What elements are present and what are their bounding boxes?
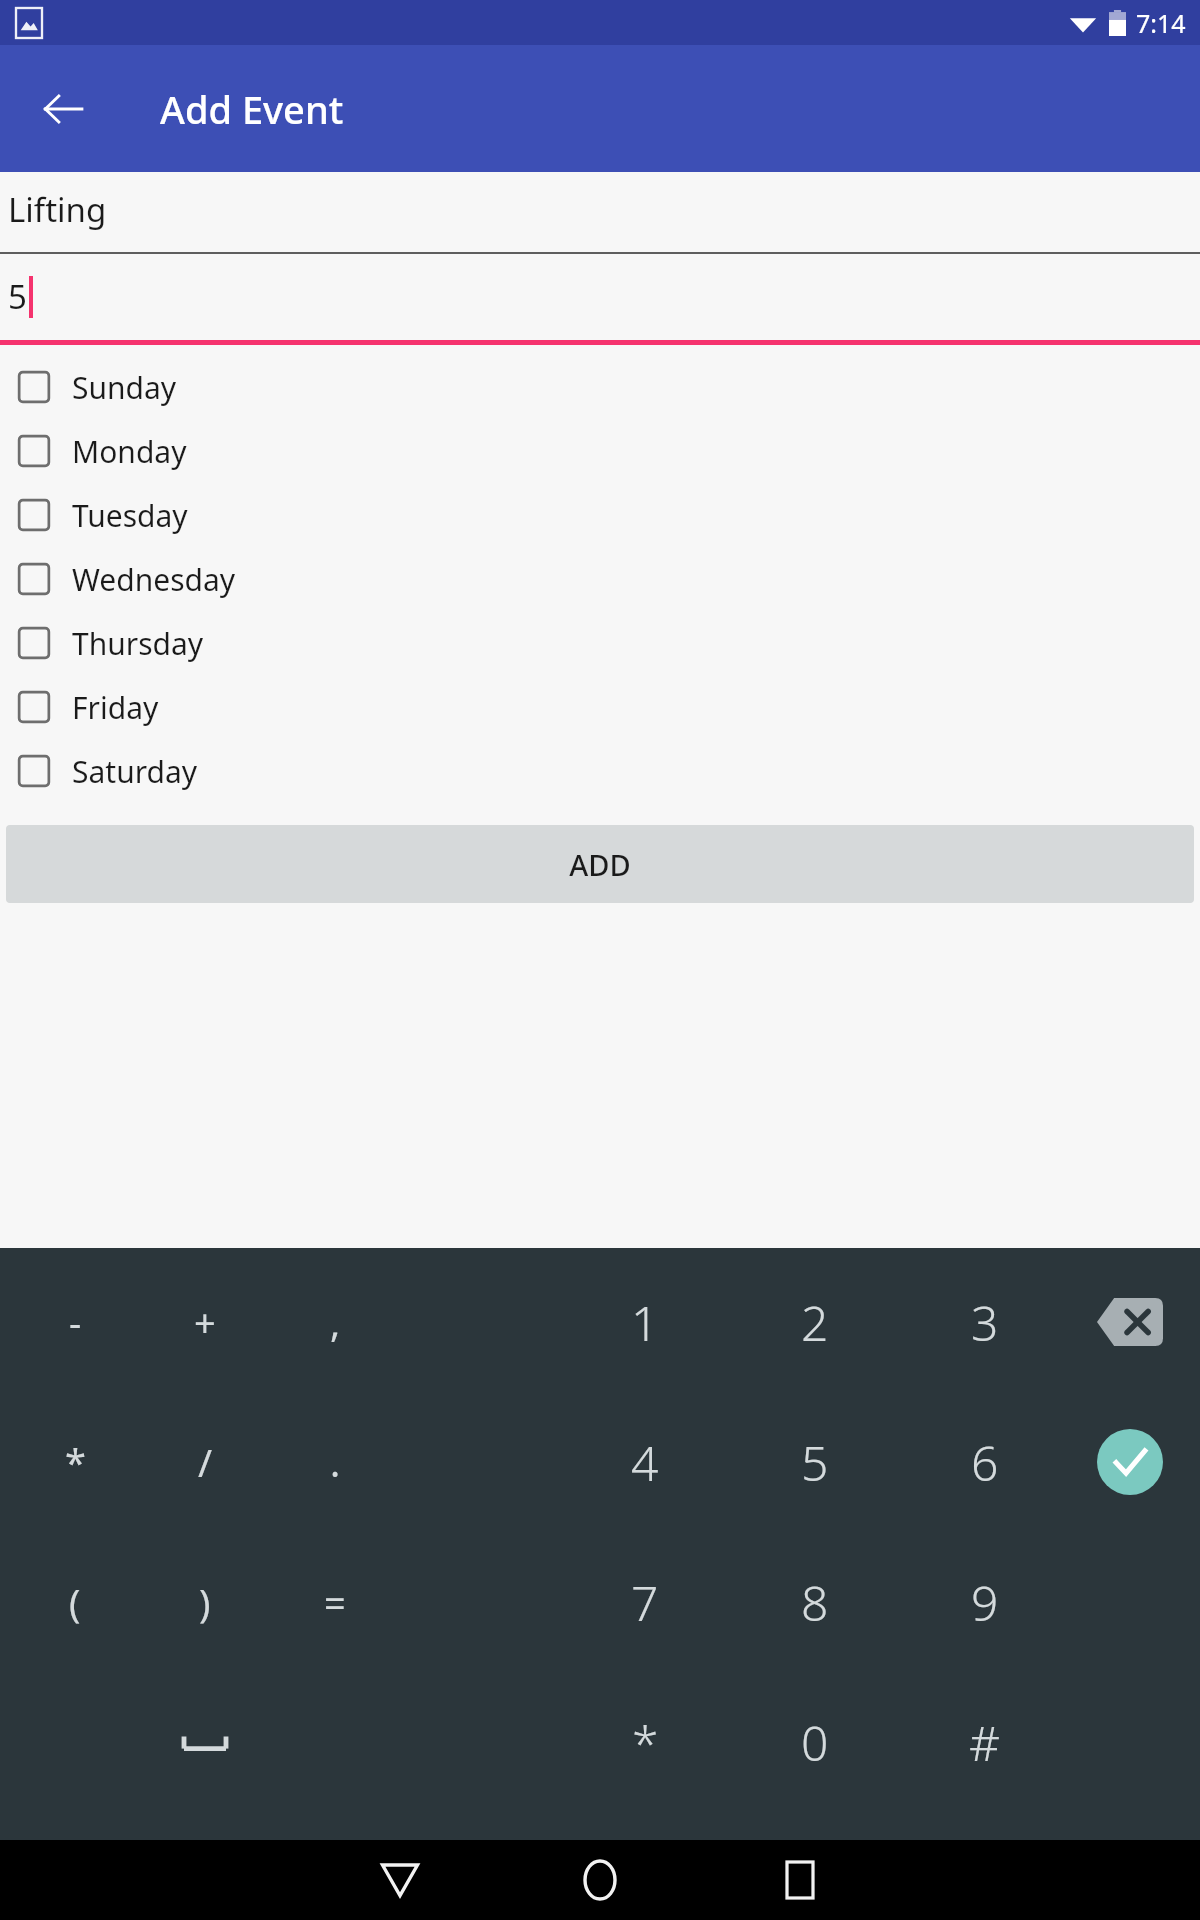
button[interactable]: * bbox=[15, 1406, 135, 1518]
staticText: Monday bbox=[72, 431, 187, 472]
button[interactable]: # bbox=[910, 1686, 1060, 1798]
staticText: Thursday bbox=[72, 623, 204, 664]
button[interactable]: + bbox=[145, 1266, 265, 1378]
staticText: Tuesday bbox=[72, 495, 188, 536]
button[interactable]: 0 bbox=[740, 1686, 890, 1798]
button[interactable]: Saturday bbox=[0, 739, 1200, 803]
button[interactable]: 7 bbox=[570, 1546, 720, 1658]
button[interactable]: 3 bbox=[910, 1266, 1060, 1378]
button[interactable]: 5 bbox=[740, 1406, 890, 1518]
staticText: 9 bbox=[971, 1570, 999, 1635]
button[interactable]: Recent apps bbox=[700, 1840, 900, 1920]
staticText: Wednesday bbox=[72, 559, 236, 600]
staticText: / bbox=[198, 1436, 213, 1488]
staticText: * bbox=[65, 1436, 86, 1488]
button[interactable]: Monday bbox=[0, 419, 1200, 483]
button[interactable]: Lifting bbox=[0, 172, 1200, 254]
staticText: Saturday bbox=[72, 751, 198, 792]
staticText: 2 bbox=[801, 1290, 829, 1355]
button[interactable]: Tuesday bbox=[0, 483, 1200, 547]
staticText: Add Event bbox=[160, 83, 344, 135]
staticText: Friday bbox=[72, 687, 159, 728]
button[interactable]: 8 bbox=[740, 1546, 890, 1658]
button[interactable]: ADD bbox=[6, 825, 1194, 903]
staticText: . bbox=[330, 1436, 341, 1488]
button[interactable]: , bbox=[275, 1266, 395, 1378]
button[interactable]: ) bbox=[145, 1546, 265, 1658]
button[interactable]: . bbox=[275, 1406, 395, 1518]
staticText: 7:14 bbox=[1136, 6, 1186, 40]
staticText: 7 bbox=[631, 1570, 659, 1635]
button[interactable]: 5 bbox=[0, 254, 1200, 345]
staticText: 4 bbox=[631, 1430, 659, 1495]
staticText: ) bbox=[199, 1576, 211, 1628]
staticText: 6 bbox=[971, 1430, 999, 1495]
staticText: ( bbox=[69, 1576, 81, 1628]
button[interactable]: 6 bbox=[910, 1406, 1060, 1518]
staticText: Lifting bbox=[8, 187, 107, 232]
button[interactable]: Enter bbox=[1065, 1406, 1195, 1518]
staticText: # bbox=[969, 1710, 1001, 1775]
staticText: ADD bbox=[569, 845, 631, 884]
staticText: 8 bbox=[801, 1570, 829, 1635]
button[interactable]: 2 bbox=[740, 1266, 890, 1378]
button[interactable]: Wednesday bbox=[0, 547, 1200, 611]
staticText: = bbox=[324, 1576, 346, 1628]
button[interactable]: 4 bbox=[570, 1406, 720, 1518]
button[interactable] bbox=[95, 1686, 315, 1798]
button[interactable]: Thursday bbox=[0, 611, 1200, 675]
staticText: + bbox=[194, 1296, 216, 1348]
button[interactable]: 1 bbox=[570, 1266, 720, 1378]
button[interactable]: Back bbox=[300, 1840, 500, 1920]
button[interactable]: = bbox=[275, 1546, 395, 1658]
button[interactable]: Sunday bbox=[0, 355, 1200, 419]
button[interactable]: Backspace bbox=[1065, 1266, 1195, 1378]
button[interactable]: / bbox=[145, 1406, 265, 1518]
button[interactable]: ( bbox=[15, 1546, 135, 1658]
staticText: Sunday bbox=[72, 367, 177, 408]
staticText: * bbox=[632, 1710, 659, 1775]
button[interactable]: Back bbox=[34, 80, 92, 138]
button[interactable]: 9 bbox=[910, 1546, 1060, 1658]
staticText: - bbox=[69, 1296, 82, 1348]
staticText: 5 bbox=[801, 1430, 829, 1495]
staticText: 3 bbox=[971, 1290, 999, 1355]
staticText: 0 bbox=[801, 1710, 829, 1775]
button[interactable]: * bbox=[570, 1686, 720, 1798]
staticText: , bbox=[330, 1296, 341, 1348]
staticText: 1 bbox=[631, 1290, 659, 1355]
staticText: 5 bbox=[8, 274, 27, 319]
button[interactable]: - bbox=[15, 1266, 135, 1378]
button[interactable]: Home bbox=[500, 1840, 700, 1920]
button[interactable]: Friday bbox=[0, 675, 1200, 739]
